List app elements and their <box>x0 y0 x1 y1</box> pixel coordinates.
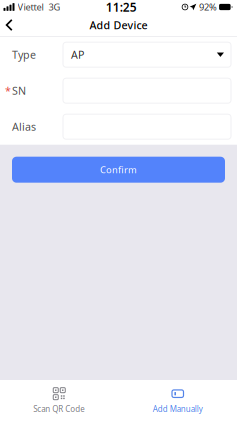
button[interactable]: Back <box>0 14 24 36</box>
staticText: 92% <box>199 1 217 13</box>
staticText: Viettel <box>17 1 43 13</box>
staticText: * <box>5 84 12 98</box>
button[interactable]: Scan QR Code <box>0 379 118 421</box>
staticText: Add Manually <box>153 404 203 414</box>
button[interactable]: Add Manually <box>118 379 237 421</box>
staticText: Scan QR Code <box>33 404 85 414</box>
staticText: Add Device <box>89 18 147 32</box>
staticText: AP <box>71 48 84 62</box>
staticText: Alias <box>12 120 36 134</box>
staticText: 11:25 <box>106 0 137 15</box>
staticText: Type <box>12 48 36 62</box>
staticText: Confirm <box>100 163 137 176</box>
staticText: 3G <box>48 1 60 13</box>
staticText: SN <box>12 84 26 98</box>
button[interactable]: Confirm <box>12 157 225 183</box>
